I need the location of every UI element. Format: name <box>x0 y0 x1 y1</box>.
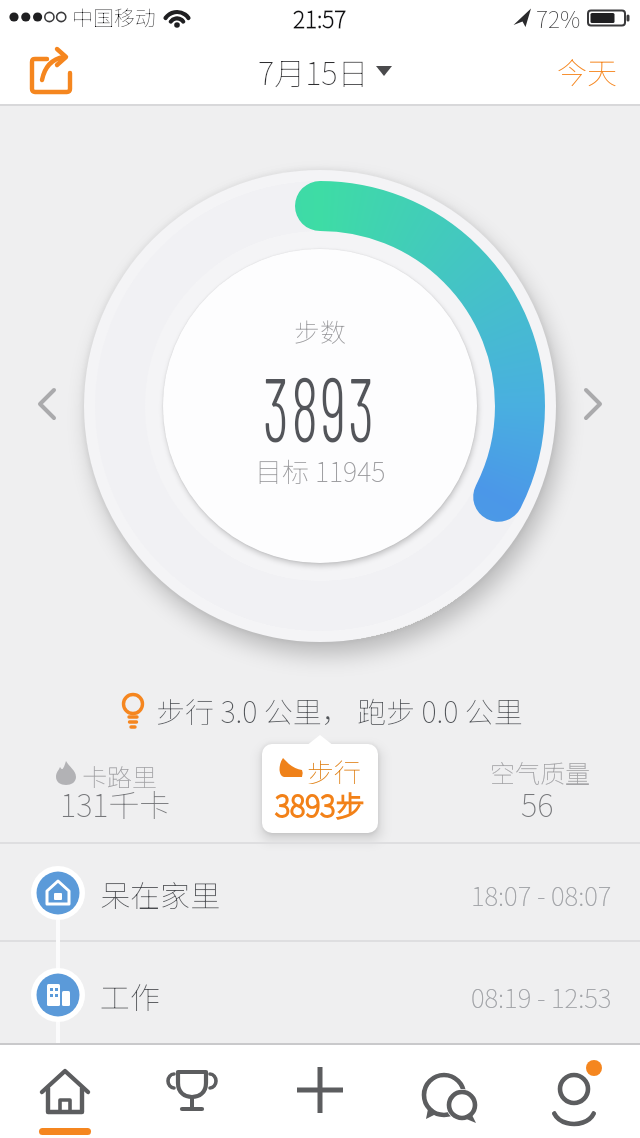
button[interactable] <box>1 1045 129 1138</box>
staticText: 步行 <box>307 752 361 784</box>
button[interactable] <box>256 1045 384 1138</box>
staticText: 131千卡 <box>60 781 171 826</box>
button[interactable] <box>384 1045 512 1138</box>
button[interactable] <box>28 384 68 428</box>
staticText: 3893步 <box>275 783 365 825</box>
button[interactable]: 今天 <box>532 38 640 102</box>
button[interactable] <box>512 1045 640 1138</box>
staticText: 工作 <box>100 974 160 1017</box>
staticText: 21:57 <box>293 1 347 34</box>
staticText: 目标 11945 <box>255 451 386 490</box>
button[interactable] <box>129 1045 256 1138</box>
staticText: 步行 3.0 公里， 跑步 0.0 公里 <box>156 689 523 731</box>
staticText: 3893步 <box>275 783 365 825</box>
button[interactable] <box>262 744 378 833</box>
staticText: 今天 <box>557 49 617 92</box>
staticText: 08:19 - 12:53 <box>471 978 612 1016</box>
staticText: 卡路里 <box>82 758 158 788</box>
button[interactable] <box>0 942 640 1042</box>
staticText: 步数 <box>294 312 347 350</box>
staticText: 7月15日 <box>258 49 369 94</box>
staticText: 中国移动 <box>72 2 156 32</box>
button[interactable] <box>0 844 640 940</box>
staticText: 18:07 - 08:07 <box>471 876 612 914</box>
button[interactable] <box>572 384 612 428</box>
staticText: 呆在家里 <box>100 872 220 915</box>
button[interactable]: 7月15日 <box>240 48 410 94</box>
staticText: 56 <box>521 781 554 826</box>
button[interactable] <box>26 46 78 98</box>
staticText: 72% <box>536 1 581 34</box>
staticText: 3893 <box>263 352 377 456</box>
staticText: 空气质量 <box>490 754 591 790</box>
